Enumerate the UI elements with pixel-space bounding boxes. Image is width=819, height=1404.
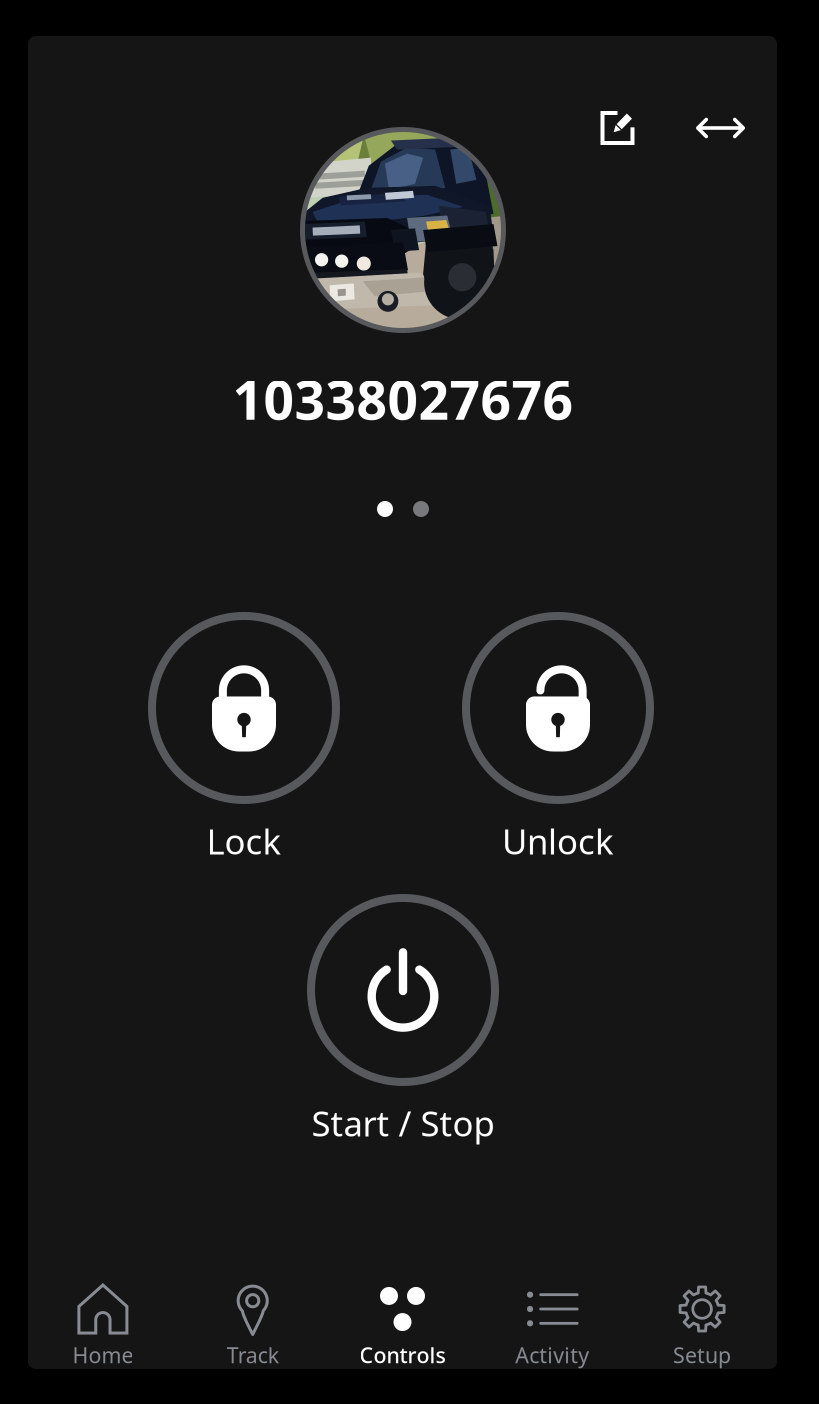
staticText: Lock — [206, 818, 281, 864]
button[interactable]: Home — [28, 1275, 178, 1367]
button[interactable]: Vehicle photo — [302, 129, 503, 330]
staticText: Setup — [673, 1341, 731, 1369]
staticText: Start / Stop — [311, 1100, 494, 1146]
button[interactable]: Activity — [477, 1275, 627, 1367]
staticText: Unlock — [502, 818, 614, 864]
button[interactable]: Lock — [148, 612, 340, 864]
staticText: Track — [227, 1341, 279, 1369]
staticText: Home — [72, 1341, 133, 1369]
staticText: Activity — [515, 1341, 589, 1369]
button[interactable]: Track — [178, 1275, 328, 1367]
button[interactable]: Setup — [627, 1275, 777, 1367]
staticText: 10338027676 — [232, 364, 573, 434]
staticText: Controls — [359, 1341, 445, 1369]
button[interactable]: Switch vehicle — [688, 96, 752, 160]
button[interactable]: Start / Stop — [307, 894, 499, 1146]
button[interactable]: Unlock — [462, 612, 654, 864]
button[interactable]: Edit vehicle — [585, 96, 649, 160]
button[interactable]: Controls — [328, 1275, 477, 1367]
